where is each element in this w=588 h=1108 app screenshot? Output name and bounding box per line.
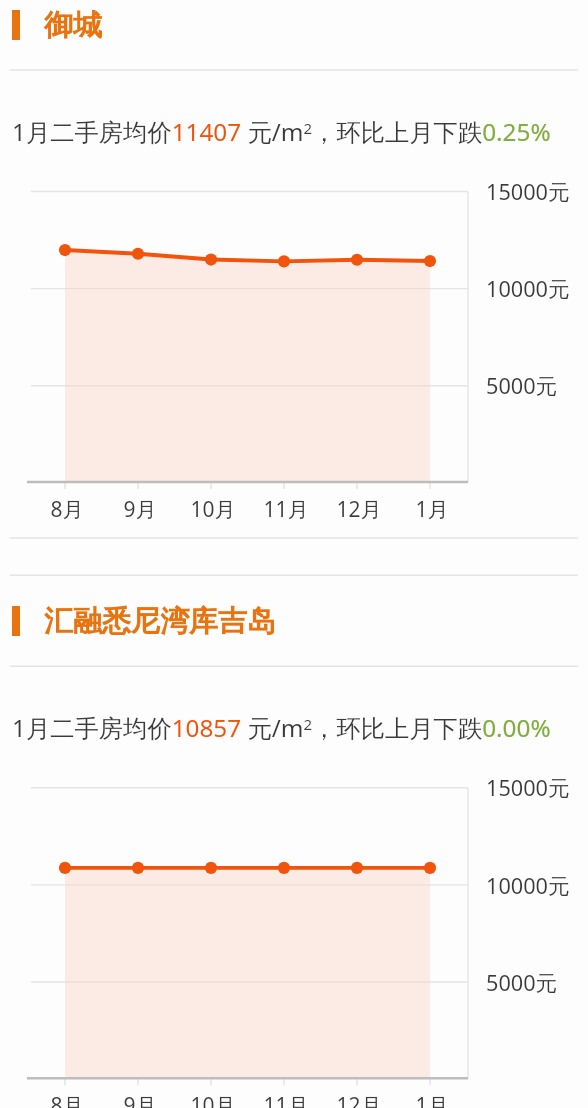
staticText: 9月 bbox=[110, 495, 170, 524]
staticText: 1月二手房均价10857 元/m2，环比上月下跌0.00% bbox=[12, 711, 551, 744]
button[interactable]: 御城 price trend chart bbox=[0, 70, 588, 538]
staticText: 15000元 bbox=[486, 177, 570, 207]
staticText: 12月 bbox=[329, 495, 389, 524]
staticText: 5000元 bbox=[486, 968, 558, 998]
staticText: 11月 bbox=[256, 495, 316, 524]
staticText: 10月 bbox=[183, 1091, 243, 1108]
staticText: 10000元 bbox=[486, 274, 570, 304]
staticText: 御城 bbox=[44, 7, 102, 44]
staticText: 10月 bbox=[183, 495, 243, 524]
staticText: 15000元 bbox=[486, 773, 570, 803]
staticText: 9月 bbox=[110, 1091, 170, 1108]
staticText: 1月 bbox=[402, 1091, 462, 1108]
staticText: 11月 bbox=[256, 1091, 316, 1108]
staticText: 1月 bbox=[402, 495, 462, 524]
button[interactable]: 御城 bbox=[0, 0, 588, 50]
staticText: 12月 bbox=[329, 1091, 389, 1108]
button[interactable]: 汇融悉尼湾库吉岛 price trend chart bbox=[0, 666, 588, 1108]
staticText: 10000元 bbox=[486, 871, 570, 901]
staticText: 5000元 bbox=[486, 371, 558, 401]
staticText: 8月 bbox=[37, 495, 97, 524]
staticText: 汇融悉尼湾库吉岛 bbox=[44, 603, 276, 640]
button[interactable]: 汇融悉尼湾库吉岛 bbox=[0, 596, 588, 646]
staticText: 1月二手房均价11407 元/m2，环比上月下跌0.25% bbox=[12, 115, 551, 148]
staticText: 8月 bbox=[37, 1091, 97, 1108]
